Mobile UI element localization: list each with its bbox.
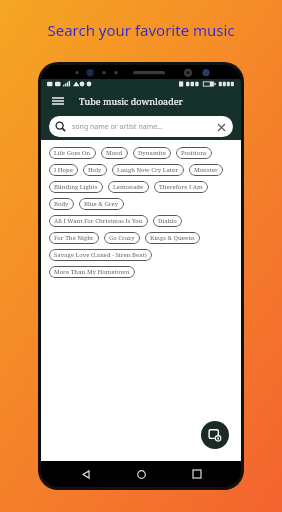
button[interactable]: Laugh Now Cry Later [112,164,184,176]
staticText: Monster [194,166,218,174]
button[interactable]: For The Night [49,232,99,244]
button[interactable]: Diablo [153,215,182,227]
staticText: Life Goes On [54,149,91,157]
staticText: All I Want For Christmas Is You [54,217,143,225]
staticText: Body [54,200,69,208]
button[interactable]: Back [75,463,97,485]
staticText: Mood [106,149,123,157]
staticText: Laugh Now Cry Later [117,166,179,174]
button[interactable]: Mood [101,147,128,159]
button[interactable]: Download [201,421,229,449]
button[interactable]: Kings & Queens [145,232,200,244]
staticText: Search your favorite music [47,20,235,40]
staticText: Kings & Queens [150,234,195,242]
staticText: Savage Love (Laxed - Siren Beat) [54,251,147,259]
button[interactable]: Therefore I Am [154,181,208,193]
button[interactable]: I Hope [49,164,78,176]
staticText: More Than My Hometown [54,268,130,276]
button[interactable]: Body [49,198,74,210]
staticText: For The Night [54,234,94,242]
staticText: Go Crazy [109,234,135,242]
staticText: Blue & Grey [84,200,119,208]
staticText: Positions [181,149,207,157]
button[interactable]: Dynamite [133,147,171,159]
button[interactable]: Life Goes On [49,147,96,159]
button[interactable]: Go Crazy [104,232,140,244]
button[interactable]: Holy [83,164,107,176]
button[interactable]: Positions [176,147,212,159]
button[interactable]: Blinding Lights [49,181,103,193]
staticText: Tube music downloader [79,95,183,107]
button[interactable]: Savage Love (Laxed - Siren Beat) [49,249,152,261]
staticText: Therefore I Am [159,183,203,191]
button[interactable]: Clear search [215,121,227,133]
button[interactable]: Recent apps [186,463,208,485]
button[interactable]: All I Want For Christmas Is You [49,215,148,227]
staticText: I Hope [54,166,73,174]
staticText: Dynamite [138,149,166,157]
staticText: Diablo [158,217,177,225]
staticText: Holy [88,166,102,174]
button[interactable]: Blue & Grey [79,198,124,210]
button[interactable]: song name or artist name... [49,116,233,137]
staticText: Lemonade [113,183,144,191]
staticText: Blinding Lights [54,183,98,191]
button[interactable]: Monster [189,164,223,176]
button[interactable]: Lemonade [108,181,149,193]
staticText: song name or artist name... [72,122,215,132]
button[interactable]: Menu [49,92,67,110]
button[interactable]: Home [130,463,152,485]
button[interactable]: More Than My Hometown [49,266,135,278]
